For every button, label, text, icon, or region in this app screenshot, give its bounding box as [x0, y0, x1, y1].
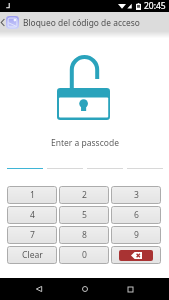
staticText: 8: [82, 229, 87, 241]
staticText: 1: [30, 189, 35, 201]
staticText: Enter a passcode: [51, 137, 119, 149]
staticText: 9: [134, 229, 139, 241]
staticText: 5: [82, 209, 87, 221]
button[interactable]: Back: [27, 278, 50, 300]
staticText: 4: [30, 209, 35, 221]
button[interactable]: Recent apps: [119, 278, 142, 300]
button[interactable]: 2: [59, 186, 109, 204]
button[interactable]: 0: [59, 246, 109, 264]
button[interactable]: 1: [7, 186, 57, 204]
staticText: 6: [134, 209, 139, 221]
staticText: 20:45: [144, 0, 166, 12]
button[interactable]: 8: [59, 226, 109, 244]
staticText: Clear: [22, 249, 43, 261]
button[interactable]: 3: [111, 186, 161, 204]
staticText: 0: [82, 249, 87, 261]
button[interactable]: Clear: [7, 246, 57, 264]
staticText: 3: [134, 189, 139, 201]
button[interactable]: 5: [59, 206, 109, 224]
button[interactable]: 9: [111, 226, 161, 244]
button[interactable]: Home: [73, 278, 96, 300]
button[interactable]: Back: [0, 12, 6, 32]
button[interactable]: Delete: [111, 246, 161, 264]
button[interactable]: 7: [7, 226, 57, 244]
button[interactable]: 4: [7, 206, 57, 224]
staticText: 7: [30, 229, 35, 241]
staticText: Bloqueo del código de acceso: [23, 17, 140, 28]
button[interactable]: 6: [111, 206, 161, 224]
staticText: 2: [82, 189, 87, 201]
